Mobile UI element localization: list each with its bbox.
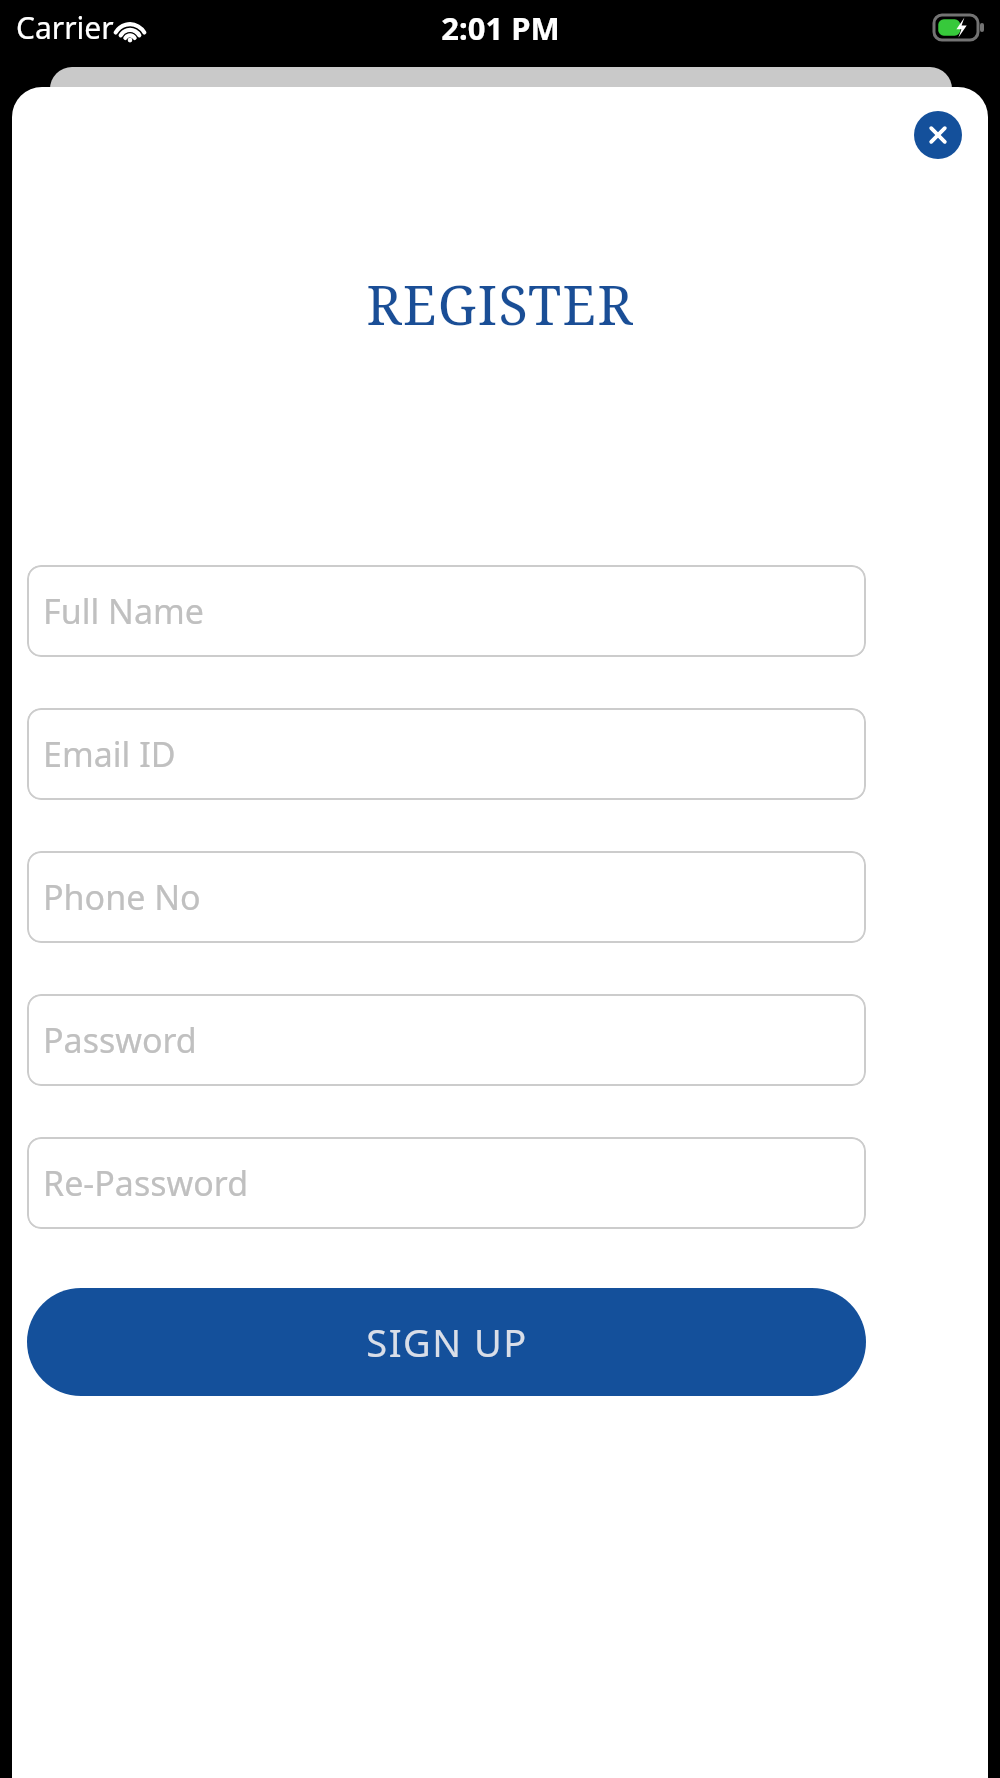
button[interactable]: Re-Password	[27, 1137, 866, 1229]
button[interactable]: SIGN UP	[27, 1288, 866, 1396]
staticText: REGISTER	[366, 267, 634, 341]
staticText: Carrier	[16, 7, 114, 48]
button[interactable]: Close	[914, 111, 962, 159]
button[interactable]: Password	[27, 994, 866, 1086]
staticText: Password	[43, 1017, 197, 1063]
button[interactable]: Email ID	[27, 708, 866, 800]
staticText: SIGN UP	[366, 1316, 528, 1368]
button[interactable]: Full Name	[27, 565, 866, 657]
button[interactable]: Phone No	[27, 851, 866, 943]
staticText: Email ID	[43, 731, 176, 777]
staticText: Re-Password	[43, 1160, 249, 1206]
staticText: Full Name	[43, 588, 204, 634]
staticText: Phone No	[43, 874, 201, 920]
staticText: 2:01 PM	[441, 7, 560, 49]
